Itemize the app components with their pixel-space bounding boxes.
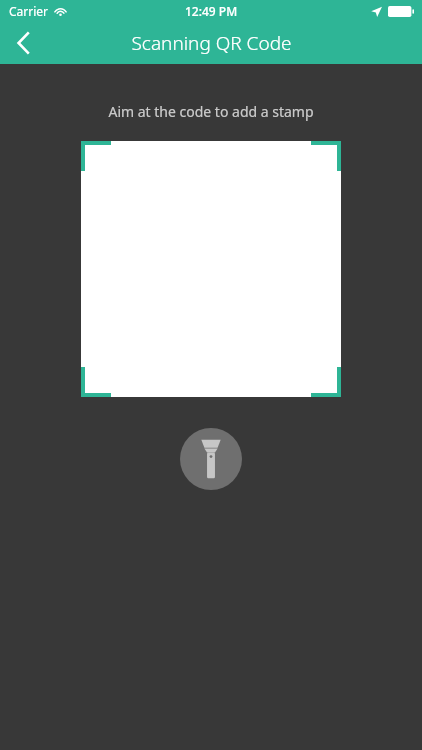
staticText: 12:49 PM (185, 3, 238, 19)
staticText: Carrier (9, 3, 49, 19)
button[interactable]: Toggle flashlight (180, 428, 242, 490)
staticText: Scanning QR Code (131, 30, 292, 56)
staticText: Aim at the code to add a stamp (108, 102, 314, 121)
button[interactable]: Back (0, 22, 48, 64)
